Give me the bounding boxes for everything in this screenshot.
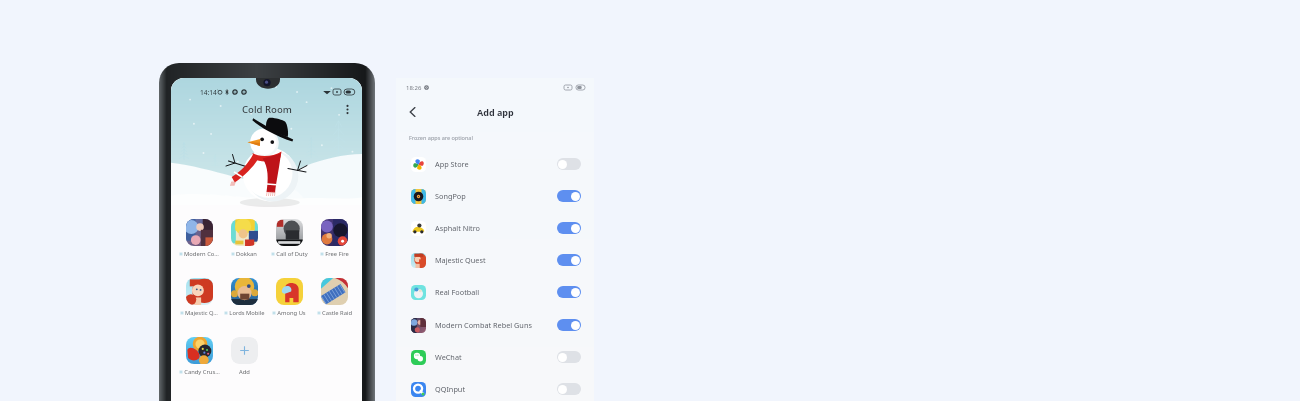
button[interactable]: Add: [222, 337, 266, 376]
staticText: Dokkan: [236, 250, 257, 258]
button[interactable]: More options: [341, 103, 354, 116]
button[interactable]: Among Us: [267, 278, 311, 317]
button[interactable]: Dokkan: [222, 219, 266, 258]
staticText: Call of Duty: [276, 250, 308, 258]
button[interactable]: Real Football: [396, 276, 594, 308]
staticText: QQInput: [435, 384, 466, 394]
staticText: SongPop: [435, 191, 466, 201]
button[interactable]: Candy Crus…: [177, 337, 221, 376]
button[interactable]: Modern Combat Rebel Guns: [396, 309, 594, 341]
button[interactable]: Majestic Quest: [396, 244, 594, 276]
staticText: Modern Combat Rebel Guns: [435, 320, 532, 330]
staticText: Majestic Q…: [185, 309, 218, 317]
staticText: Among Us: [277, 309, 306, 317]
button[interactable]: Majestic Q…: [177, 278, 221, 317]
staticText: 14:14: [200, 88, 217, 97]
staticText: Majestic Quest: [435, 255, 486, 265]
button[interactable]: WeChat: [396, 341, 594, 373]
staticText: Candy Crus…: [184, 368, 220, 376]
staticText: Free Fire: [325, 250, 349, 258]
button[interactable]: SongPop: [396, 180, 594, 212]
button[interactable]: App Store: [396, 148, 594, 180]
staticText: Modern Co…: [184, 250, 219, 258]
staticText: Lords Mobile: [229, 309, 265, 317]
button[interactable]: Back: [404, 104, 420, 120]
staticText: Frozen apps are optional: [409, 134, 473, 141]
staticText: Castle Raid: [322, 309, 352, 317]
button[interactable]: Castle Raid: [312, 278, 356, 317]
button[interactable]: Modern Co…: [177, 219, 221, 258]
button[interactable]: QQInput: [396, 373, 594, 401]
staticText: WeChat: [435, 352, 462, 362]
button[interactable]: Asphalt Nitro: [396, 212, 594, 244]
staticText: 18:26: [406, 84, 422, 92]
staticText: Real Football: [435, 287, 480, 297]
button[interactable]: Free Fire: [312, 219, 356, 258]
staticText: App Store: [435, 159, 469, 169]
button[interactable]: Call of Duty: [267, 219, 311, 258]
staticText: Asphalt Nitro: [435, 223, 481, 233]
button[interactable]: Lords Mobile: [222, 278, 266, 317]
staticText: Add: [239, 368, 250, 376]
staticText: Cold Room: [242, 103, 292, 116]
staticText: Add app: [477, 106, 514, 118]
